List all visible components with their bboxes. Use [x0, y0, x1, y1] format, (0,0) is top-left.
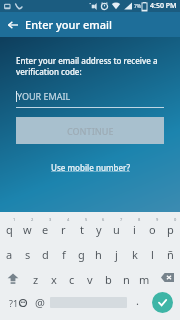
staticText: t: [80, 222, 84, 237]
button[interactable]: l: [144, 240, 161, 265]
staticText: m: [139, 272, 150, 287]
button[interactable]: 7: [108, 215, 125, 240]
button[interactable]: n: [118, 265, 134, 290]
staticText: s: [25, 247, 31, 262]
staticText: r: [61, 222, 66, 237]
staticText: 0: [174, 217, 177, 222]
staticText: i: [133, 222, 136, 237]
button[interactable]: 6: [90, 215, 107, 240]
staticText: o: [149, 222, 156, 237]
button[interactable]: 5: [73, 215, 90, 240]
staticText: 4:50 PM: [150, 1, 177, 11]
staticText: z: [33, 272, 39, 287]
button[interactable]: Delete: [154, 265, 180, 290]
staticText: CONTINUE: [67, 125, 114, 137]
button[interactable]: 2: [19, 215, 36, 240]
button[interactable]: k: [126, 240, 143, 265]
staticText: j: [115, 247, 118, 262]
staticText: 5: [85, 217, 88, 222]
button[interactable]: g: [73, 240, 90, 265]
button[interactable]: b: [100, 265, 116, 290]
staticText: 7: [120, 217, 123, 222]
staticText: d: [42, 247, 49, 262]
staticText: 2: [31, 217, 34, 222]
button[interactable]: ñ: [162, 240, 179, 265]
staticText: .: [136, 293, 139, 308]
button[interactable]: z: [28, 265, 44, 290]
button[interactable]: j: [108, 240, 125, 265]
staticText: p: [167, 222, 174, 237]
button[interactable]: Back: [0, 12, 25, 37]
button[interactable]: Use mobile number?: [51, 162, 130, 173]
button[interactable]: d: [37, 240, 54, 265]
button[interactable]: Enter: [147, 290, 177, 315]
staticText: ?1: [9, 297, 19, 309]
staticText: 9: [156, 217, 159, 222]
staticText: u: [113, 222, 120, 237]
button[interactable]: YOUR EMAIL: [16, 90, 164, 108]
staticText: e: [42, 222, 49, 237]
staticText: Enter your email: [25, 17, 112, 32]
staticText: c: [69, 272, 75, 287]
staticText: x: [51, 272, 57, 287]
button[interactable]: s: [19, 240, 36, 265]
staticText: 7%: [134, 3, 142, 10]
button[interactable]: h: [90, 240, 107, 265]
staticText: 6: [102, 217, 105, 222]
button[interactable]: @: [30, 290, 50, 315]
button[interactable]: 4: [55, 215, 72, 240]
staticText: h: [95, 247, 102, 262]
staticText: YOUR EMAIL: [17, 90, 71, 102]
staticText: 1: [13, 217, 16, 222]
button[interactable]: 3: [37, 215, 54, 240]
button[interactable]: 8: [126, 215, 143, 240]
staticText: Enter your email address to receive a ve…: [16, 55, 164, 77]
button[interactable]: Shift: [0, 265, 26, 290]
button[interactable]: CONTINUE: [16, 117, 164, 144]
staticText: 8: [138, 217, 141, 222]
staticText: y: [96, 222, 102, 237]
staticText: f: [62, 247, 66, 262]
staticText: q: [6, 222, 13, 237]
staticText: k: [132, 247, 138, 262]
staticText: b: [105, 272, 112, 287]
button[interactable]: f: [55, 240, 72, 265]
staticText: 3: [49, 217, 52, 222]
button[interactable]: a: [1, 240, 18, 265]
button[interactable]: m: [136, 265, 152, 290]
button[interactable]: c: [64, 265, 80, 290]
staticText: n: [123, 272, 130, 287]
button[interactable]: x: [46, 265, 62, 290]
button[interactable]: 9: [144, 215, 161, 240]
staticText: w: [23, 222, 32, 237]
staticText: 4: [67, 217, 70, 222]
button[interactable]: .: [127, 290, 147, 315]
button[interactable]: 0: [162, 215, 179, 240]
staticText: v: [87, 272, 93, 287]
button[interactable]: v: [82, 265, 98, 290]
staticText: @: [35, 295, 45, 310]
staticText: ñ: [167, 247, 174, 262]
staticText: l: [151, 247, 154, 262]
button[interactable]: ?1: [6, 290, 30, 315]
staticText: a: [6, 247, 13, 262]
staticText: g: [78, 247, 85, 262]
button[interactable]: 1: [1, 215, 18, 240]
